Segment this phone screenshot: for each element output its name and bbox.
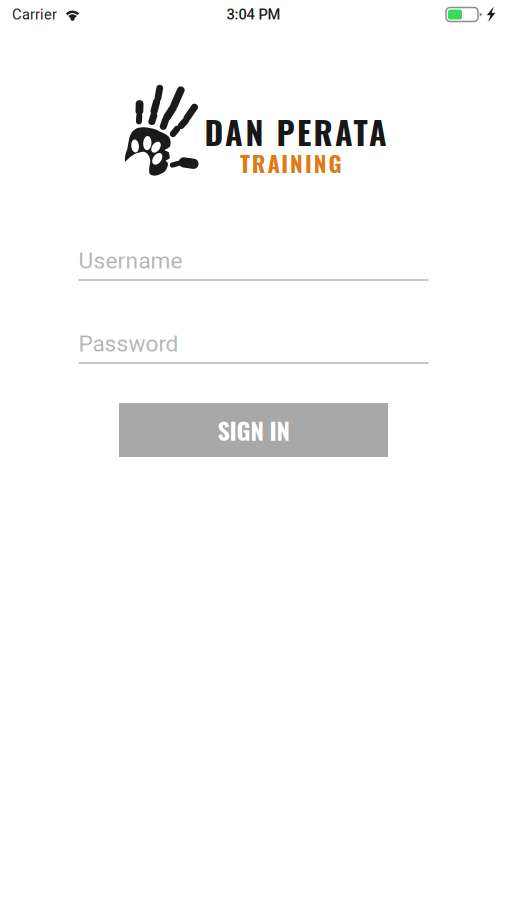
staticText: TRAINING — [240, 146, 341, 180]
staticText: SIGN IN — [217, 412, 289, 448]
staticText: Carrier — [12, 6, 57, 23]
button[interactable]: SIGN IN — [119, 403, 388, 457]
staticText: Username — [78, 247, 182, 274]
staticText: DAN PERATA — [204, 108, 387, 155]
staticText: 3:04 PM — [226, 6, 280, 23]
staticText: Password — [78, 330, 178, 357]
